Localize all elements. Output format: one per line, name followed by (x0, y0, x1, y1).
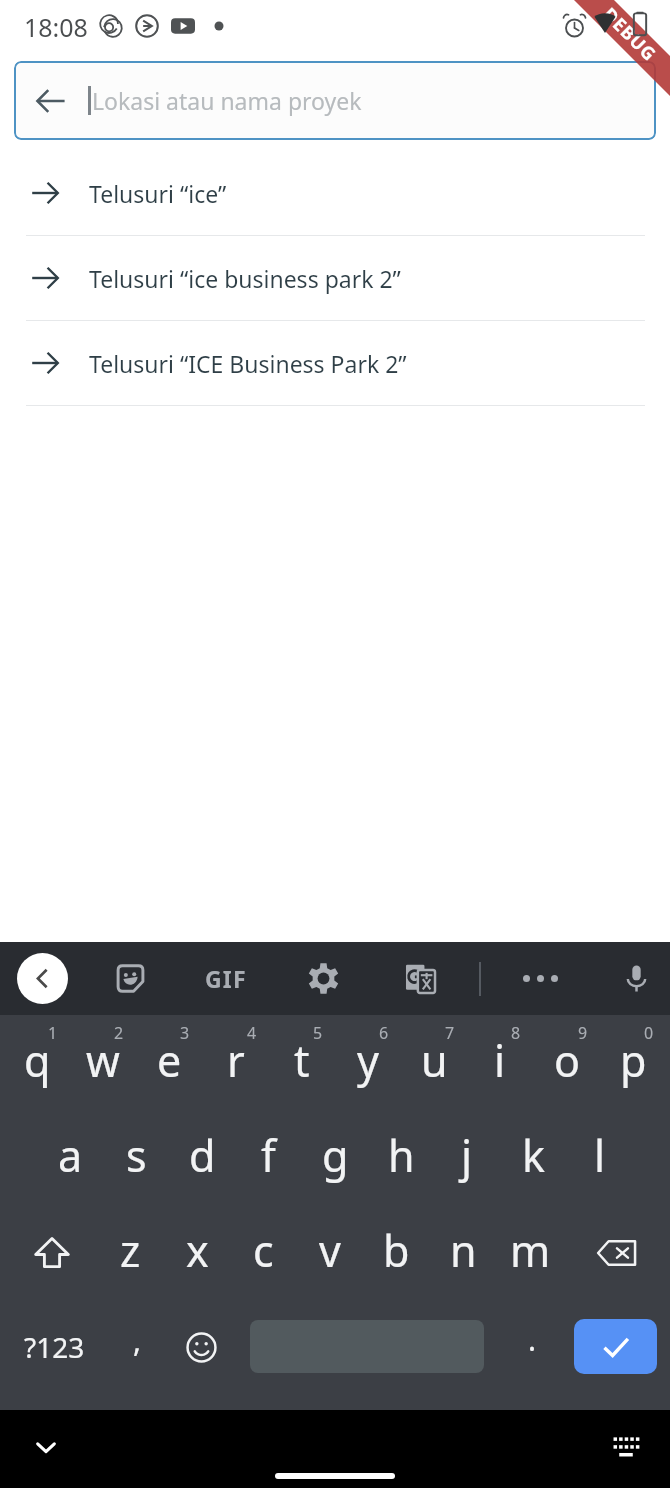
button[interactable]: u (401, 1015, 467, 1110)
button[interactable]: Enter (574, 1319, 657, 1374)
staticText: i (494, 1031, 506, 1090)
button[interactable]: Shift (6, 1205, 98, 1300)
button[interactable]: g (302, 1110, 368, 1205)
button[interactable]: p (600, 1015, 666, 1110)
staticText: z (120, 1221, 141, 1280)
button[interactable]: Settings (297, 952, 349, 1004)
staticText: v (319, 1221, 341, 1280)
button[interactable]: k (500, 1110, 566, 1205)
button[interactable]: e (136, 1015, 202, 1110)
button[interactable]: d (169, 1110, 235, 1205)
staticText: t (294, 1031, 310, 1090)
button[interactable]: ?123 (6, 1313, 102, 1381)
staticText: 1 (48, 1022, 58, 1044)
button[interactable]: r (203, 1015, 269, 1110)
staticText: Telusuri “ice” (89, 178, 227, 209)
button[interactable]: v (297, 1205, 363, 1300)
staticText: 2 (114, 1022, 124, 1044)
button[interactable]: Back (17, 953, 68, 1004)
button[interactable]: i (467, 1015, 533, 1110)
button[interactable]: c (230, 1205, 296, 1300)
button[interactable]: , (108, 1313, 166, 1381)
staticText: f (261, 1126, 276, 1185)
staticText: , (133, 1320, 142, 1361)
staticText: w (86, 1031, 120, 1090)
staticText: n (450, 1221, 477, 1280)
button[interactable]: Telusuri “ice business park 2” (0, 236, 670, 321)
button[interactable]: Backspace (571, 1205, 663, 1300)
button[interactable]: l (567, 1110, 633, 1205)
staticText: d (189, 1126, 216, 1185)
staticText: u (421, 1031, 448, 1090)
staticText: e (157, 1031, 182, 1090)
staticText: DEBUG (597, 2, 662, 66)
staticText: 4 (247, 1022, 257, 1044)
staticText: k (522, 1126, 545, 1185)
button[interactable]: w (70, 1015, 136, 1110)
staticText: 18:08 (24, 10, 88, 44)
staticText: m (510, 1221, 551, 1280)
staticText: q (24, 1031, 51, 1090)
button[interactable]: . (503, 1313, 561, 1381)
button[interactable]: Telusuri “ice” (0, 151, 670, 236)
button[interactable]: b (363, 1205, 429, 1300)
staticText: Telusuri “ICE Business Park 2” (89, 348, 407, 379)
staticText: h (388, 1126, 415, 1185)
button[interactable]: o (534, 1015, 600, 1110)
button[interactable]: GIF (200, 952, 252, 1004)
staticText: j (461, 1126, 473, 1185)
staticText: 9 (578, 1022, 588, 1044)
button[interactable]: f (235, 1110, 301, 1205)
staticText: Lokasi atau nama proyek (92, 85, 362, 116)
button[interactable]: Emoji (172, 1313, 230, 1381)
button[interactable]: Translate (394, 952, 446, 1004)
button[interactable]: Telusuri “ICE Business Park 2” (0, 321, 670, 406)
staticText: 3 (180, 1022, 190, 1044)
staticText: x (186, 1221, 209, 1280)
button[interactable]: t (269, 1015, 335, 1110)
button[interactable]: x (164, 1205, 230, 1300)
staticText: b (383, 1221, 410, 1280)
button[interactable]: q (4, 1015, 70, 1110)
staticText: GIF (205, 963, 247, 994)
button[interactable]: Back (14, 61, 88, 140)
staticText: c (253, 1221, 274, 1280)
staticText: s (126, 1126, 147, 1185)
staticText: 5 (313, 1022, 323, 1044)
button[interactable]: z (97, 1205, 163, 1300)
staticText: p (620, 1031, 647, 1090)
staticText: 8 (511, 1022, 521, 1044)
button[interactable]: j (434, 1110, 500, 1205)
button[interactable]: h (368, 1110, 434, 1205)
button[interactable]: s (103, 1110, 169, 1205)
button[interactable]: More options (514, 952, 566, 1004)
staticText: Telusuri “ice business park 2” (89, 263, 401, 294)
button[interactable]: Switch keyboard (606, 1427, 646, 1467)
staticText: g (322, 1126, 349, 1185)
staticText: 6 (379, 1022, 389, 1044)
button[interactable]: m (497, 1205, 563, 1300)
button[interactable]: Voice input (610, 952, 662, 1004)
button[interactable]: Hide keyboard (26, 1427, 66, 1467)
button[interactable]: n (430, 1205, 496, 1300)
button[interactable]: Stickers (104, 952, 156, 1004)
staticText: l (594, 1126, 606, 1185)
staticText: 7 (445, 1022, 455, 1044)
staticText: ?123 (24, 1328, 85, 1366)
button[interactable]: a (37, 1110, 103, 1205)
staticText: r (227, 1031, 245, 1090)
staticText: . (528, 1319, 537, 1360)
staticText: a (58, 1126, 83, 1185)
button[interactable]: y (335, 1015, 401, 1110)
staticText: o (554, 1031, 581, 1090)
staticText: 0 (644, 1022, 654, 1044)
staticText: y (357, 1031, 379, 1090)
